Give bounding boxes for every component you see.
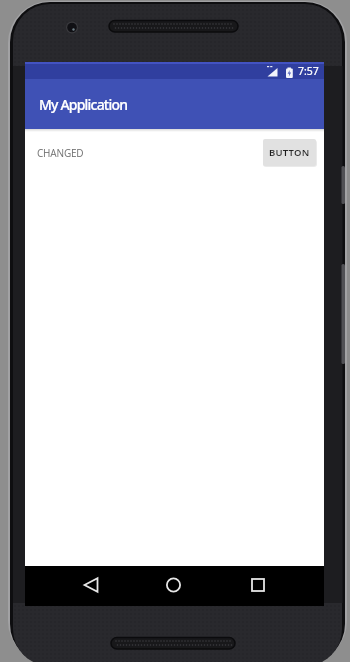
button[interactable]: BUTTON bbox=[263, 139, 316, 166]
staticText: 7:57 bbox=[298, 64, 319, 78]
button[interactable] bbox=[224, 566, 324, 606]
staticText: BUTTON bbox=[269, 146, 310, 159]
staticText: CHANGED bbox=[37, 146, 84, 160]
staticText: My Application bbox=[39, 95, 128, 114]
button[interactable] bbox=[25, 566, 124, 606]
button[interactable] bbox=[124, 566, 224, 606]
